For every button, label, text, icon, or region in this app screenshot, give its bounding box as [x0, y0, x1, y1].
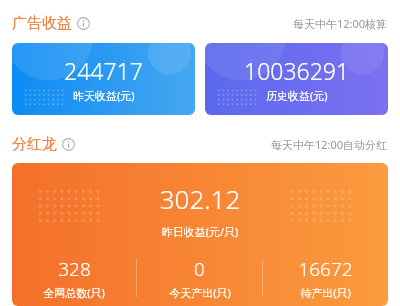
- button[interactable]: 16672: [263, 256, 388, 300]
- staticText: 昨天收益(元): [73, 88, 135, 103]
- staticText: 每天中午12:00自动分红: [271, 137, 388, 152]
- staticText: 待产出(只): [300, 285, 351, 300]
- button[interactable]: 302.12: [12, 163, 388, 306]
- button[interactable]: 328: [12, 256, 136, 300]
- staticText: 244717: [64, 55, 143, 86]
- staticText: 0: [194, 256, 205, 282]
- staticText: 今天产出(只): [169, 285, 231, 300]
- staticText: 昨日收益(元/只): [12, 224, 388, 239]
- staticText: 分红龙: [12, 135, 57, 154]
- staticText: 302.12: [12, 181, 388, 216]
- staticText: 广告收益: [12, 14, 72, 33]
- button[interactable]: 0: [137, 256, 262, 300]
- staticText: 16672: [298, 256, 353, 282]
- staticText: 每天中午12:00核算: [293, 16, 388, 31]
- staticText: 历史收益(元): [266, 88, 328, 103]
- staticText: 全网总数(只): [43, 285, 105, 300]
- button[interactable]: 广告收益说明: [12, 14, 90, 33]
- button[interactable]: 分红龙说明: [12, 135, 75, 154]
- staticText: 10036291: [244, 55, 350, 86]
- staticText: 328: [58, 256, 91, 282]
- button[interactable]: 244717: [12, 43, 195, 115]
- button[interactable]: 10036291: [205, 43, 388, 115]
